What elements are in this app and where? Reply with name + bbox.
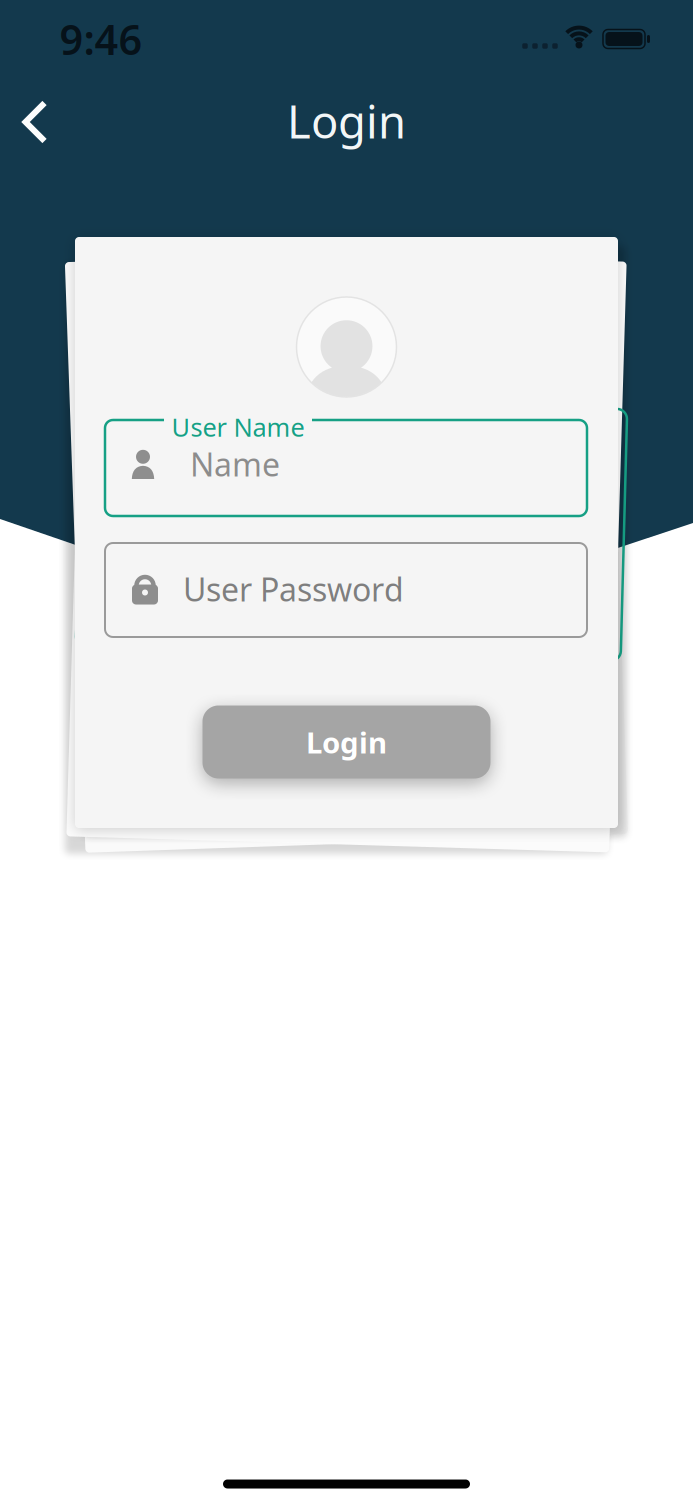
staticText: User Name [171, 410, 304, 444]
staticText: Name [190, 443, 280, 485]
button[interactable]: Name [105, 420, 587, 516]
staticText: Login [287, 91, 406, 151]
staticText: Login [306, 722, 387, 761]
button[interactable]: User Password [105, 543, 587, 637]
button[interactable]: Login [202, 705, 490, 778]
button[interactable]: Back [13, 91, 56, 153]
staticText: 9:46 [59, 12, 142, 66]
staticText: User Password [183, 568, 404, 610]
